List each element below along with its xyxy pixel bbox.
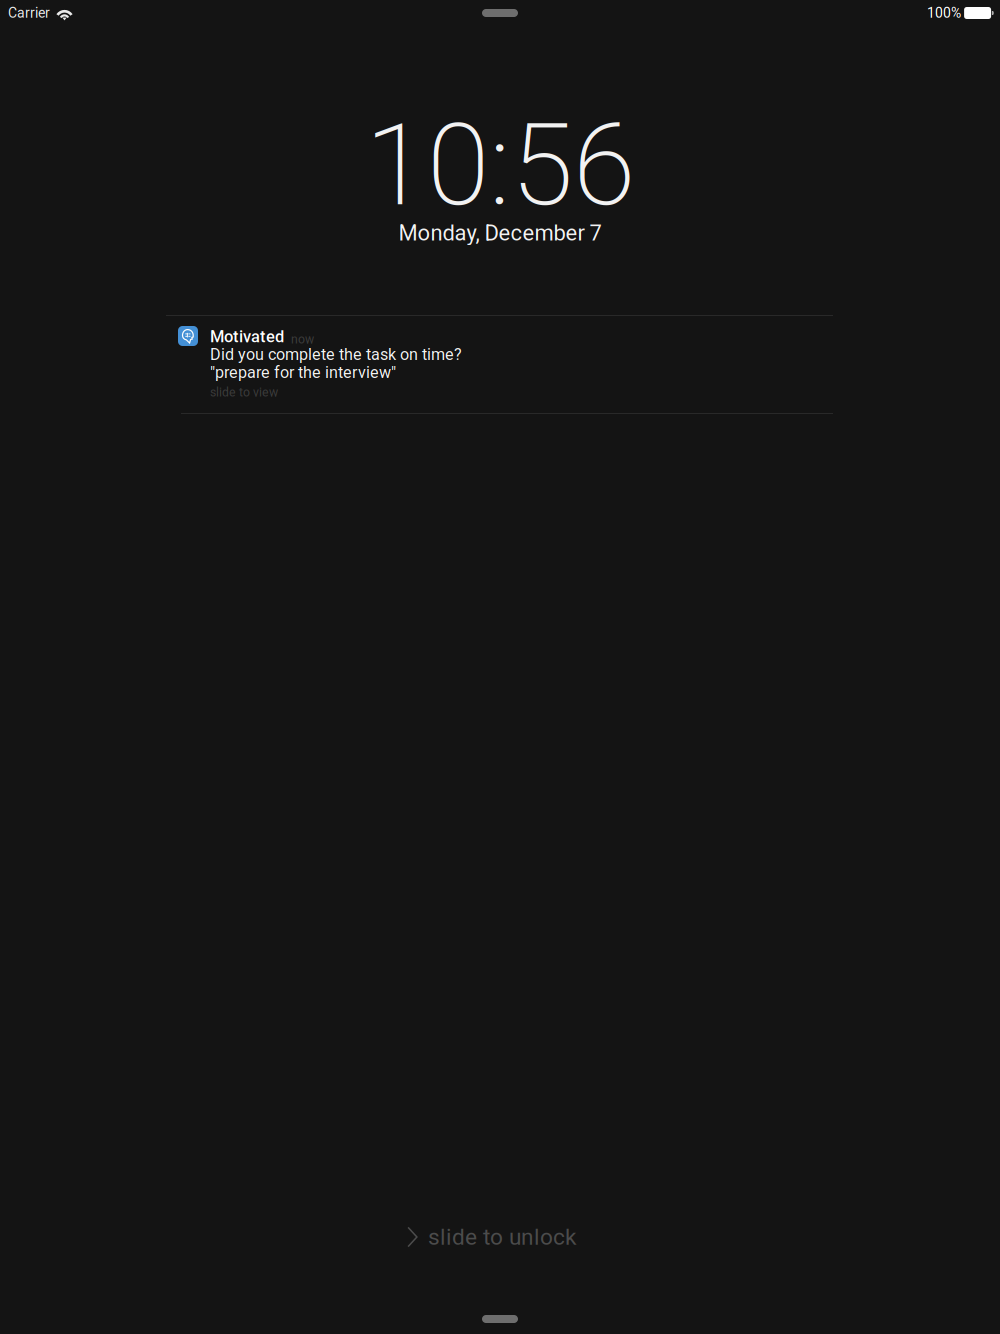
staticText: slide to unlock (428, 1224, 576, 1250)
staticText: Monday, December 7 (398, 220, 601, 246)
button[interactable]: slide to unlock (407, 1225, 576, 1249)
button[interactable]: Home (482, 1315, 518, 1323)
staticText: 100% (927, 5, 961, 21)
staticText: Motivated (210, 327, 284, 346)
staticText: now (291, 332, 314, 346)
staticText: Carrier (8, 5, 50, 21)
staticText: Did you complete the task on time? (210, 345, 462, 364)
button[interactable]: Motivated (166, 315, 833, 414)
staticText: "prepare for the interview" (210, 363, 396, 382)
staticText: slide to view (210, 385, 278, 399)
staticText: 10:56 (365, 99, 635, 232)
